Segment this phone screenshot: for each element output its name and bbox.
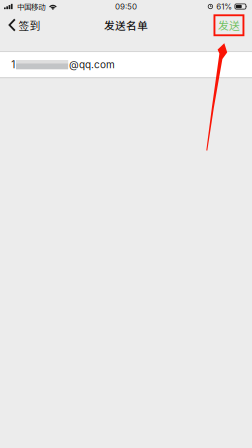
staticText: 中国移动 xyxy=(17,1,45,12)
staticText: 发送 xyxy=(218,17,240,33)
staticText: 61% xyxy=(216,2,232,11)
button[interactable]: 1 xyxy=(0,52,252,77)
button[interactable]: 签到 xyxy=(0,13,46,39)
staticText: 发送名单 xyxy=(104,17,148,33)
button[interactable]: 发送 xyxy=(211,13,244,39)
staticText: 09:50 xyxy=(115,2,137,11)
staticText: 1 xyxy=(11,59,15,71)
staticText: @qq.com xyxy=(69,59,115,71)
staticText: 签到 xyxy=(18,17,40,33)
